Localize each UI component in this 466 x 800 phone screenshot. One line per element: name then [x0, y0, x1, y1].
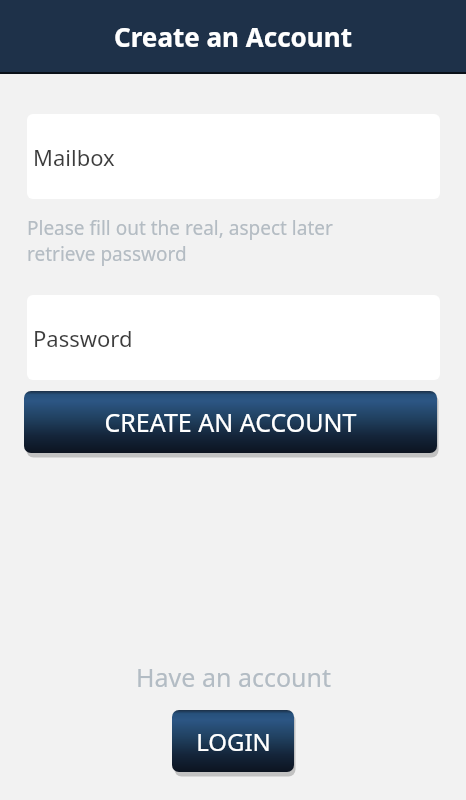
staticText: Please fill out the real, aspect later r… — [27, 215, 372, 266]
staticText: Password — [33, 323, 133, 353]
button[interactable]: CREATE AN ACCOUNT — [24, 391, 437, 453]
staticText: Have an account — [136, 660, 331, 694]
button[interactable]: LOGIN — [172, 710, 294, 772]
staticText: CREATE AN ACCOUNT — [104, 405, 357, 439]
staticText: LOGIN — [196, 725, 271, 758]
staticText: Create an Account — [114, 19, 352, 54]
button[interactable]: Password — [27, 295, 440, 380]
staticText: Mailbox — [33, 142, 115, 172]
button[interactable]: Mailbox — [27, 114, 440, 199]
